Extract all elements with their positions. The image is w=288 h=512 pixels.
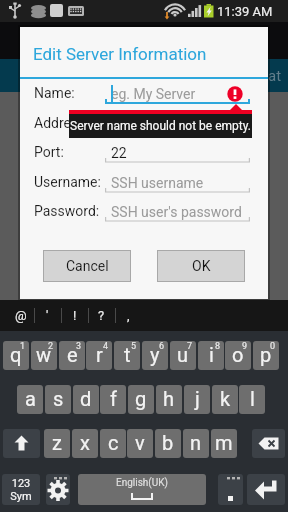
- staticText: 5: [131, 341, 137, 352]
- staticText: t: [124, 343, 131, 366]
- staticText: v: [135, 431, 145, 454]
- staticText: !: [73, 308, 77, 323]
- staticText: 7: [187, 341, 193, 352]
- staticText: Address:: [34, 115, 89, 131]
- button[interactable]: SSH user's password: [105, 202, 250, 222]
- button[interactable]: m: [211, 429, 237, 458]
- button[interactable]: ?: [88, 300, 115, 331]
- staticText: 4: [103, 341, 109, 352]
- staticText: Cancel: [66, 258, 109, 274]
- button[interactable]: b: [155, 429, 181, 458]
- button[interactable]: r: [86, 341, 112, 370]
- staticText: 8: [215, 341, 221, 352]
- button[interactable]: o: [225, 341, 251, 370]
- button[interactable]: q: [3, 341, 29, 370]
- button[interactable]: Space: [78, 474, 206, 505]
- staticText: 6: [159, 341, 165, 352]
- staticText: o: [232, 343, 244, 366]
- button[interactable]: d: [73, 385, 99, 414]
- staticText: b: [162, 431, 174, 454]
- staticText: Username:: [34, 174, 101, 190]
- staticText: ?: [98, 308, 105, 323]
- button[interactable]: Cancel: [43, 250, 131, 282]
- button[interactable]: !: [61, 300, 88, 331]
- staticText: i: [209, 343, 214, 366]
- button[interactable]: Backspace: [252, 429, 285, 458]
- staticText: w: [36, 343, 52, 366]
- staticText: @: [15, 308, 27, 323]
- staticText: d: [80, 387, 92, 410]
- button[interactable]: Settings: [46, 474, 70, 505]
- staticText: l: [250, 387, 255, 410]
- button[interactable]: y: [142, 341, 168, 370]
- staticText: g: [135, 387, 147, 410]
- button[interactable]: c: [100, 429, 126, 458]
- button[interactable]: ,: [115, 300, 142, 331]
- button[interactable]: w: [31, 341, 57, 370]
- button[interactable]: eg. My Server: [105, 84, 250, 104]
- button[interactable]: n: [183, 429, 209, 458]
- staticText: Edit Server Information: [33, 44, 207, 64]
- staticText: Password:: [34, 203, 100, 219]
- button[interactable]: Shift: [3, 429, 40, 458]
- staticText: at: [268, 67, 282, 85]
- staticText: 1: [20, 341, 26, 352]
- button[interactable]: ': [34, 300, 61, 331]
- button[interactable]: s: [45, 385, 71, 414]
- staticText: e: [67, 343, 78, 366]
- staticText: English(UK): [116, 477, 169, 489]
- staticText: ,: [127, 308, 130, 323]
- button[interactable]: g: [128, 385, 154, 414]
- button[interactable]: OK: [157, 250, 245, 282]
- button[interactable]: i: [198, 341, 224, 370]
- staticText: x: [80, 431, 90, 454]
- button[interactable]: Enter: [247, 474, 285, 505]
- button[interactable]: [105, 114, 250, 134]
- staticText: 22: [111, 145, 127, 161]
- button[interactable]: p: [253, 341, 279, 370]
- staticText: 2: [48, 341, 54, 352]
- staticText: Port:: [34, 144, 64, 160]
- staticText: OK: [192, 258, 211, 274]
- button[interactable]: 123 Sym: [2, 474, 40, 505]
- staticText: n: [190, 431, 202, 454]
- staticText: a: [25, 387, 36, 410]
- button[interactable]: f: [100, 385, 126, 414]
- button[interactable]: j: [184, 385, 210, 414]
- staticText: Name:: [34, 85, 75, 101]
- staticText: p: [260, 343, 272, 366]
- staticText: eg. My Server: [111, 86, 196, 102]
- staticText: ': [46, 308, 49, 323]
- button[interactable]: l: [239, 385, 265, 414]
- staticText: Server name should not be empty.: [70, 119, 251, 133]
- button[interactable]: Period: [218, 474, 243, 505]
- button[interactable]: @: [7, 300, 34, 331]
- staticText: s: [53, 387, 64, 410]
- staticText: u: [177, 343, 189, 366]
- button[interactable]: z: [44, 429, 70, 458]
- staticText: z: [52, 431, 62, 454]
- button[interactable]: e: [59, 341, 85, 370]
- staticText: 11:39 AM: [217, 4, 273, 19]
- button[interactable]: 22: [105, 143, 250, 163]
- button[interactable]: SSH username: [105, 173, 250, 193]
- button[interactable]: a: [17, 385, 43, 414]
- staticText: r: [96, 343, 103, 366]
- staticText: y: [150, 343, 160, 366]
- button[interactable]: h: [156, 385, 182, 414]
- staticText: 0: [270, 341, 276, 352]
- button[interactable]: x: [72, 429, 98, 458]
- button[interactable]: u: [170, 341, 196, 370]
- button[interactable]: v: [127, 429, 153, 458]
- button[interactable]: t: [114, 341, 140, 370]
- staticText: j: [195, 387, 200, 410]
- staticText: f: [110, 387, 117, 410]
- other: Error: [227, 86, 243, 102]
- staticText: SSH user's password: [111, 204, 242, 220]
- staticText: 3: [76, 341, 82, 352]
- staticText: 9: [242, 341, 248, 352]
- button[interactable]: k: [212, 385, 238, 414]
- staticText: m: [215, 431, 233, 454]
- staticText: q: [10, 343, 22, 366]
- staticText: SSH username: [111, 175, 204, 191]
